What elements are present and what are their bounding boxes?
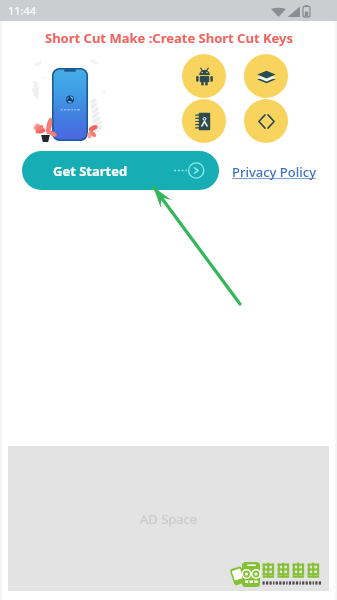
button[interactable]: Contacts	[182, 99, 226, 143]
staticText: AD Space	[140, 510, 198, 528]
staticText: Privacy Policy	[232, 163, 316, 181]
staticText: 11:44	[8, 3, 37, 18]
button[interactable]: Layers	[244, 54, 288, 98]
staticText: Short Cut Make :Create Short Cut Keys	[45, 29, 293, 47]
button[interactable]: Code	[244, 99, 288, 143]
button[interactable]: Privacy Policy	[232, 163, 316, 181]
button[interactable]: Get Started	[22, 151, 219, 190]
staticText: Get Started	[53, 162, 128, 180]
button[interactable]: Android	[182, 54, 226, 98]
